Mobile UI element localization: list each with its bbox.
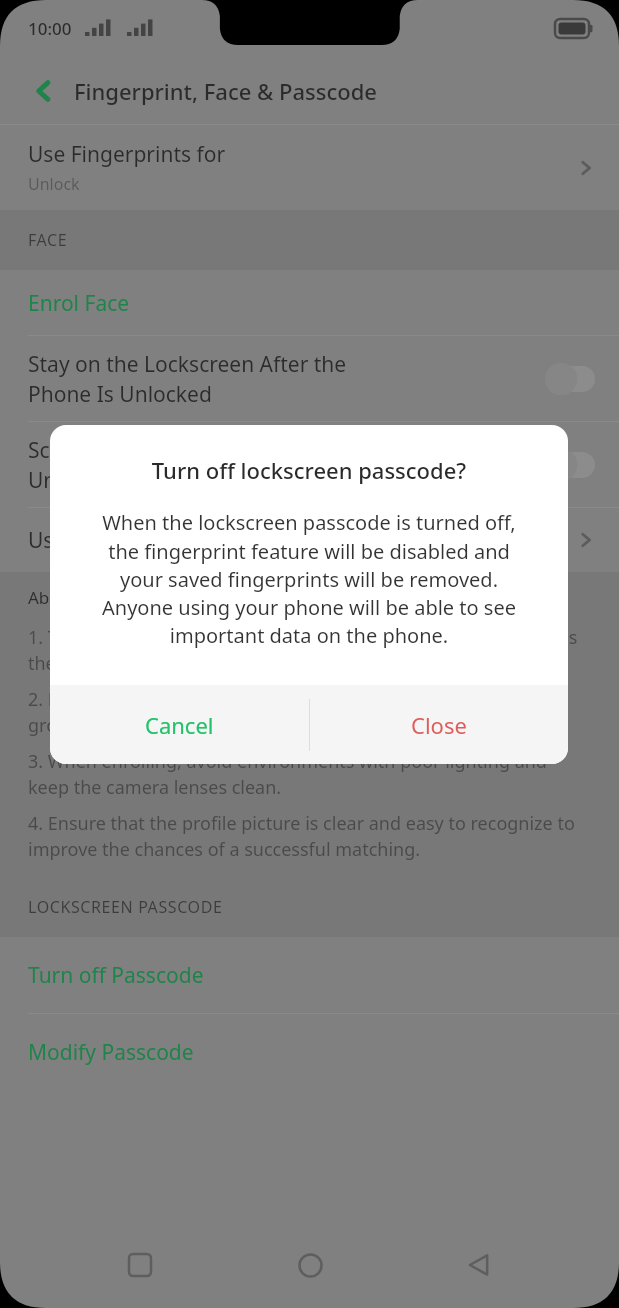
staticText: 10:00 xyxy=(28,17,72,40)
staticText: Screen Automatically Lights Up to Unlock xyxy=(28,436,448,494)
staticText: FACE xyxy=(28,229,68,251)
button[interactable]: Modify Passcode xyxy=(0,1014,619,1091)
staticText: Enrol Face xyxy=(28,289,130,318)
staticText: When the lockscreen passcode is turned o… xyxy=(86,509,532,649)
staticText: Turn off Passcode xyxy=(28,961,204,990)
button[interactable]: Recents xyxy=(110,1235,170,1295)
staticText: 1. The face data is stored securely on t… xyxy=(28,625,591,675)
staticText: Close xyxy=(411,710,467,740)
staticText: 3. When enrolling, avoid environments wi… xyxy=(28,749,591,799)
staticText: Use Fingerprints for xyxy=(28,140,226,169)
staticText: 4. Ensure that the profile picture is cl… xyxy=(28,811,591,861)
button[interactable]: Close xyxy=(309,685,568,764)
button[interactable]: Turn off Passcode xyxy=(0,937,619,1014)
staticText: 2. Do not change your appearance dramati… xyxy=(28,687,591,737)
button[interactable]: Enrol Face xyxy=(0,270,619,336)
button[interactable]: Screen Automatically Lights Up to Unlock xyxy=(0,422,619,508)
button[interactable]: Back xyxy=(24,71,64,111)
button[interactable]: Cancel xyxy=(50,685,309,764)
staticText: Fingerprint, Face & Passcode xyxy=(74,76,377,106)
staticText: Use Face for xyxy=(28,526,150,555)
staticText: Modify Passcode xyxy=(28,1038,194,1067)
staticText: About Face xyxy=(28,586,117,609)
button[interactable]: Use Fingerprints for xyxy=(0,125,619,210)
button[interactable]: Toggle xyxy=(545,452,595,478)
button[interactable]: Toggle xyxy=(545,366,595,392)
staticText: Cancel xyxy=(145,710,214,740)
staticText: Stay on the Lockscreen After the Phone I… xyxy=(28,350,448,408)
button[interactable]: Stay on the Lockscreen After the Phone I… xyxy=(0,336,619,422)
staticText: Turn off lockscreen passcode? xyxy=(70,455,548,485)
button[interactable]: Use Face for xyxy=(0,508,619,572)
staticText: LOCKSCREEN PASSCODE xyxy=(28,896,223,918)
staticText: Unlock xyxy=(28,173,80,195)
button[interactable]: Back xyxy=(449,1235,509,1295)
button[interactable]: Home xyxy=(280,1235,340,1295)
